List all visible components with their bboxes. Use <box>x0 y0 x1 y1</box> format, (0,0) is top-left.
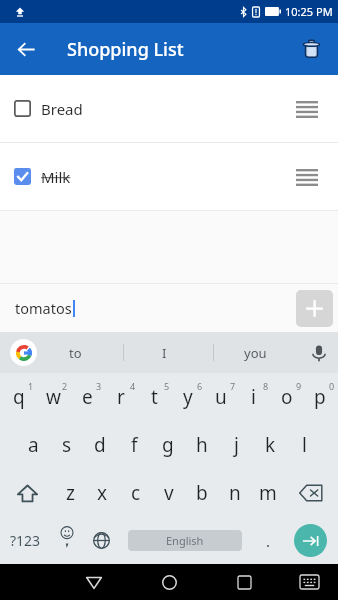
button[interactable]: Enter <box>294 524 327 557</box>
staticText: 9 <box>296 380 302 392</box>
button[interactable]: Change language <box>84 517 118 564</box>
button[interactable]: j <box>219 421 253 469</box>
staticText: h <box>196 432 208 458</box>
button[interactable]: Milk <box>0 143 338 210</box>
staticText: c <box>131 480 141 506</box>
button[interactable]: i <box>237 373 270 421</box>
staticText: e <box>82 384 93 410</box>
button[interactable]: English <box>128 530 242 551</box>
staticText: y <box>183 384 193 410</box>
button[interactable]: d <box>83 421 117 469</box>
staticText: to <box>69 344 82 362</box>
button[interactable]: g <box>151 421 185 469</box>
staticText: English <box>166 533 204 548</box>
staticText: n <box>229 480 241 506</box>
button[interactable]: s <box>50 421 83 469</box>
staticText: 10:25 PM <box>285 4 333 19</box>
staticText: k <box>265 432 276 458</box>
staticText: m <box>259 480 277 506</box>
button[interactable]: h <box>185 421 219 469</box>
button[interactable]: Reorder <box>295 97 319 121</box>
staticText: . <box>266 531 271 551</box>
button[interactable]: Emoji and comma <box>50 517 84 564</box>
staticText: v <box>164 480 174 506</box>
staticText: z <box>66 480 75 506</box>
staticText: 8 <box>263 380 269 392</box>
staticText: 5 <box>164 380 170 392</box>
button[interactable]: w <box>36 373 70 421</box>
button[interactable]: y <box>171 373 204 421</box>
staticText: a <box>28 432 39 458</box>
staticText: l <box>302 432 307 458</box>
staticText: i <box>251 384 256 410</box>
staticText: q <box>13 384 25 410</box>
button[interactable]: Recent apps <box>222 564 266 600</box>
button[interactable]: x <box>86 469 119 517</box>
button[interactable]: Backspace <box>284 469 338 517</box>
button[interactable]: I <box>120 332 209 373</box>
button[interactable]: m <box>251 469 284 517</box>
staticText: 1 <box>28 380 34 392</box>
staticText: r <box>117 384 125 410</box>
staticText: p <box>314 384 326 410</box>
button[interactable]: u <box>204 373 237 421</box>
button[interactable]: t <box>138 373 171 421</box>
button[interactable]: Switch keyboard <box>287 564 331 600</box>
button[interactable]: Add item <box>296 290 333 327</box>
staticText: you <box>244 344 267 362</box>
staticText: f <box>131 432 138 458</box>
button[interactable]: o <box>270 373 303 421</box>
button[interactable]: Back <box>6 29 46 69</box>
staticText: 4 <box>130 380 136 392</box>
staticText: I <box>162 344 167 362</box>
button[interactable]: p <box>303 373 336 421</box>
button[interactable]: n <box>218 469 251 517</box>
staticText: d <box>94 432 106 458</box>
staticText: g <box>162 432 174 458</box>
staticText: u <box>215 384 227 410</box>
staticText: Bread <box>41 99 83 119</box>
button[interactable]: Google search <box>10 339 37 366</box>
staticText: 3 <box>96 380 102 392</box>
staticText: 6 <box>197 380 203 392</box>
button[interactable]: Bread <box>0 75 338 142</box>
button[interactable]: q <box>2 373 36 421</box>
staticText: w <box>46 384 61 410</box>
staticText: tomatos <box>15 298 72 318</box>
button[interactable]: Back <box>72 564 116 600</box>
staticText: 7 <box>230 380 236 392</box>
staticText: o <box>281 384 293 410</box>
button[interactable]: c <box>119 469 152 517</box>
button[interactable]: a <box>17 421 50 469</box>
button[interactable]: k <box>253 421 287 469</box>
staticText: ?123 <box>10 531 41 550</box>
button[interactable]: v <box>152 469 185 517</box>
button[interactable]: Reorder <box>295 165 319 189</box>
staticText: 2 <box>62 380 68 392</box>
staticText: Shopping List <box>67 37 184 62</box>
staticText: b <box>196 480 208 506</box>
button[interactable]: r <box>104 373 138 421</box>
button[interactable]: . <box>243 517 294 564</box>
button[interactable]: you <box>214 332 297 373</box>
staticText: 0 <box>329 380 335 392</box>
button[interactable]: ?123 <box>0 517 50 564</box>
staticText: x <box>97 480 108 506</box>
button[interactable]: Voice input <box>306 340 332 366</box>
staticText: t <box>151 384 158 410</box>
button[interactable]: f <box>117 421 151 469</box>
button[interactable]: to <box>30 332 120 373</box>
button[interactable]: Shift <box>0 469 54 517</box>
button[interactable]: Delete all <box>293 31 329 67</box>
button[interactable]: e <box>70 373 104 421</box>
staticText: j <box>234 432 239 458</box>
button[interactable]: z <box>54 469 86 517</box>
button[interactable]: l <box>287 421 321 469</box>
button[interactable]: Home <box>147 564 191 600</box>
staticText: Milk <box>41 167 71 187</box>
button[interactable]: b <box>185 469 218 517</box>
staticText: s <box>62 432 72 458</box>
